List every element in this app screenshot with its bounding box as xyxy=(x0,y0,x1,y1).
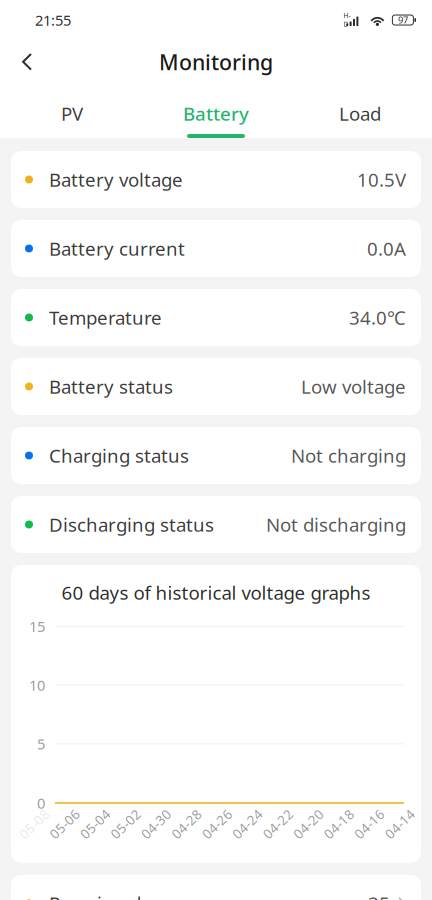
staticText: Battery status xyxy=(49,374,173,399)
staticText: Discharging status xyxy=(49,512,214,537)
staticText: 05-02 xyxy=(108,817,144,835)
staticText: 0 xyxy=(37,793,45,813)
button[interactable]: Discharging status xyxy=(11,496,421,553)
staticText: 05-08 xyxy=(17,817,53,835)
staticText: 21:55 xyxy=(35,10,71,30)
button[interactable]: Battery voltage xyxy=(11,151,421,208)
button[interactable]: Charging status xyxy=(11,427,421,484)
staticText: 0.0A xyxy=(367,236,406,261)
staticText: Not charging xyxy=(291,443,406,468)
staticText: 35 xyxy=(368,891,390,900)
staticText: Monitoring xyxy=(159,48,273,76)
staticText: 04-24 xyxy=(230,817,266,835)
staticText: 04-28 xyxy=(169,817,205,835)
staticText: Temperature xyxy=(49,305,162,330)
staticText: 04-26 xyxy=(200,817,236,835)
staticText: Battery voltage xyxy=(49,167,183,192)
staticText: Not discharging xyxy=(266,512,406,537)
staticText: Battery xyxy=(183,101,249,126)
staticText: 05-06 xyxy=(47,817,83,835)
staticText: 10 xyxy=(29,675,45,695)
staticText: 04-20 xyxy=(291,817,327,835)
staticText: Battery current xyxy=(49,236,185,261)
button[interactable]: Load xyxy=(288,84,432,138)
button[interactable]: Battery current xyxy=(11,220,421,277)
staticText: 34.0℃ xyxy=(349,305,406,330)
staticText: HD xyxy=(343,11,350,29)
staticText: 04-30 xyxy=(139,817,175,835)
staticText: 15 xyxy=(29,617,45,636)
staticText: 04-18 xyxy=(322,817,358,835)
button[interactable]: Battery status xyxy=(11,358,421,415)
staticText: Load xyxy=(339,101,381,126)
staticText: PV xyxy=(61,101,83,126)
button[interactable]: Battery xyxy=(144,84,288,138)
button[interactable]: PV xyxy=(0,84,144,138)
staticText: 04-22 xyxy=(261,817,297,835)
staticText: 05-04 xyxy=(78,817,114,835)
staticText: Low voltage xyxy=(301,374,406,399)
button[interactable]: Running days xyxy=(11,875,421,900)
staticText: 97 xyxy=(398,14,408,26)
button[interactable]: Back xyxy=(5,40,49,84)
staticText: 04-16 xyxy=(352,817,388,835)
staticText: 10.5V xyxy=(357,167,406,192)
button[interactable]: Temperature xyxy=(11,289,421,346)
staticText: 60 days of historical voltage graphs xyxy=(61,580,370,605)
staticText: 04-14 xyxy=(382,817,418,835)
staticText: Running days xyxy=(49,891,170,900)
staticText: Charging status xyxy=(49,443,189,468)
staticText: 5 xyxy=(37,734,45,754)
